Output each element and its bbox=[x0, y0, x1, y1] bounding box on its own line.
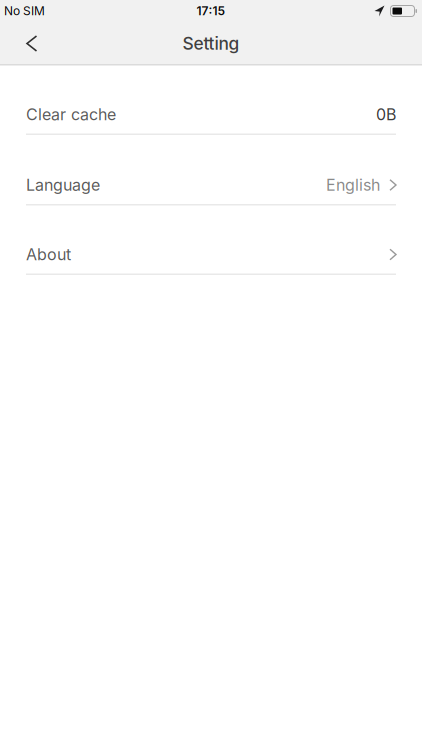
staticText: 0B bbox=[376, 105, 396, 124]
staticText: Setting bbox=[182, 33, 239, 54]
button[interactable]: Clear cache bbox=[0, 102, 422, 126]
staticText: Language bbox=[26, 176, 100, 194]
button[interactable]: Back bbox=[0, 29, 52, 60]
staticText: About bbox=[26, 245, 71, 264]
staticText: 17:15 bbox=[196, 4, 225, 18]
staticText: Clear cache bbox=[26, 105, 116, 124]
staticText: No SIM bbox=[4, 4, 45, 18]
button[interactable]: Language bbox=[0, 173, 422, 197]
button[interactable]: About bbox=[0, 242, 422, 266]
staticText: English bbox=[326, 176, 380, 194]
